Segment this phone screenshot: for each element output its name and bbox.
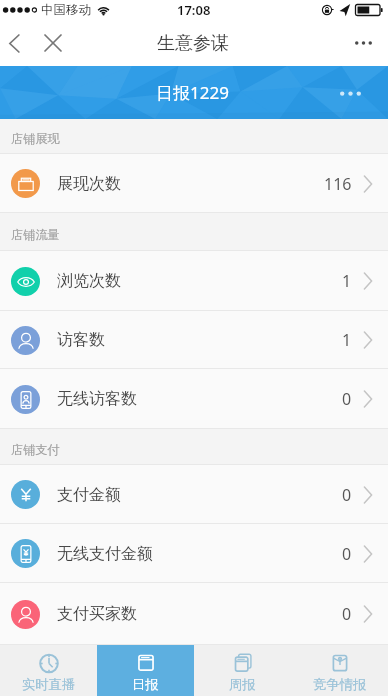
staticText: 中国移动 — [41, 2, 91, 18]
button[interactable]: 周报 — [194, 645, 291, 696]
staticText: 访客数 — [57, 330, 105, 350]
button[interactable]: 访客数 — [0, 311, 388, 369]
button[interactable]: 支付买家数 — [0, 583, 388, 645]
button[interactable]: 竞争情报 — [291, 645, 388, 696]
button[interactable]: More options — [338, 20, 388, 66]
staticText: 0 — [342, 543, 352, 565]
staticText: 支付买家数 — [57, 604, 137, 624]
staticText: 店铺流量 — [11, 227, 60, 242]
staticText: 17:08 — [177, 1, 211, 19]
button[interactable]: 无线支付金额 — [0, 524, 388, 583]
staticText: 116 — [324, 173, 352, 195]
button[interactable]: 展现次数 — [0, 154, 388, 213]
staticText: 店铺支付 — [11, 442, 60, 457]
button[interactable]: Banner options — [337, 66, 364, 119]
staticText: 0 — [342, 603, 352, 625]
button[interactable]: 日报 — [97, 645, 194, 696]
button[interactable]: 支付金额 — [0, 465, 388, 524]
button[interactable]: 实时直播 — [0, 645, 97, 696]
staticText: 0 — [342, 484, 352, 506]
staticText: 竞争情报 — [313, 676, 367, 693]
staticText: 实时直播 — [22, 676, 76, 693]
staticText: 周报 — [229, 676, 256, 693]
staticText: 无线访客数 — [57, 389, 137, 409]
staticText: 支付金额 — [57, 485, 121, 505]
staticText: 1 — [342, 270, 352, 292]
staticText: 日报1229 — [156, 81, 229, 104]
staticText: 日报 — [132, 676, 159, 693]
staticText: 展现次数 — [57, 174, 121, 194]
button[interactable]: 浏览次数 — [0, 251, 388, 311]
staticText: 生意参谋 — [157, 32, 229, 55]
button[interactable]: Close — [28, 20, 77, 66]
button[interactable]: 无线访客数 — [0, 369, 388, 429]
staticText: 无线支付金额 — [57, 544, 153, 564]
staticText: 1 — [342, 329, 352, 351]
button[interactable]: Back — [0, 20, 28, 66]
staticText: 浏览次数 — [57, 271, 121, 291]
staticText: 店铺展现 — [11, 131, 60, 146]
staticText: 0 — [342, 388, 352, 410]
